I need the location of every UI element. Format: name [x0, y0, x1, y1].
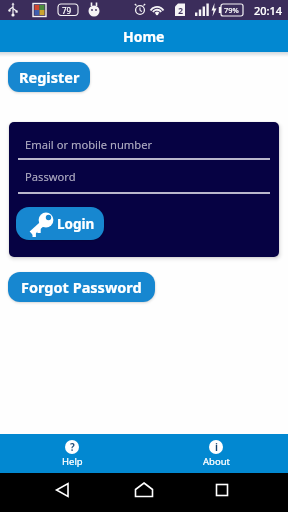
staticText: 20:14 [254, 3, 283, 18]
staticText: Register [19, 67, 80, 87]
button[interactable] [0, 473, 96, 512]
button[interactable]: Register [8, 62, 90, 92]
staticText: 79% [224, 5, 239, 15]
staticText: Login [57, 215, 95, 233]
button[interactable]: Login [16, 207, 104, 240]
staticText: Home [123, 27, 165, 46]
button[interactable]: ? [0, 434, 144, 473]
staticText: 2 [178, 4, 184, 16]
staticText: Email or mobile number [25, 137, 153, 152]
staticText: ? [70, 440, 75, 454]
staticText: Help [62, 455, 83, 468]
staticText: Forgot Password [21, 277, 142, 297]
staticText: About [203, 455, 230, 468]
staticText: i [215, 440, 218, 454]
staticText: Password [25, 169, 76, 184]
button[interactable] [96, 473, 192, 512]
staticText: 79 [62, 5, 72, 16]
button[interactable]: i [144, 434, 288, 473]
button[interactable] [192, 473, 288, 512]
button[interactable]: Forgot Password [8, 272, 155, 302]
